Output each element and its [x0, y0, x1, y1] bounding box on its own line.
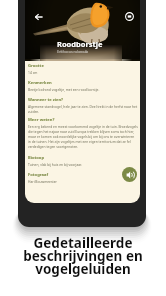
staticText: Tuinen, vlak bij huis en bij voorjaar.: [28, 162, 82, 166]
staticText: Wanneer te zien?: [28, 97, 64, 103]
button[interactable]: Back: [33, 11, 45, 23]
staticText: Algemene standvogel, hele jaar te zien. …: [28, 104, 138, 114]
staticText: Hari Bouwmeester: [28, 179, 57, 183]
staticText: 14 cm: [28, 70, 38, 74]
staticText: Biotoop: [28, 155, 44, 161]
staticText: Gedetailleerde beschrijvingen en vogelge…: [0, 234, 166, 278]
staticText: Kenmerken: [28, 80, 52, 86]
button[interactable]: Play bird sound: [122, 167, 137, 182]
staticText: Een erg bekend en meest voorkomend vogel…: [28, 124, 138, 149]
staticText: Grootte: [28, 63, 44, 69]
button[interactable]: Photo credits: [125, 12, 134, 21]
staticText: Erithacus rubecula: [57, 49, 89, 54]
staticText: Roodborstje: [57, 39, 103, 49]
staticText: Fotograaf: [28, 172, 48, 178]
staticText: Meer weten?: [28, 117, 55, 123]
staticText: Beetje bolrond vogeltje, met een rood bo…: [28, 87, 100, 91]
